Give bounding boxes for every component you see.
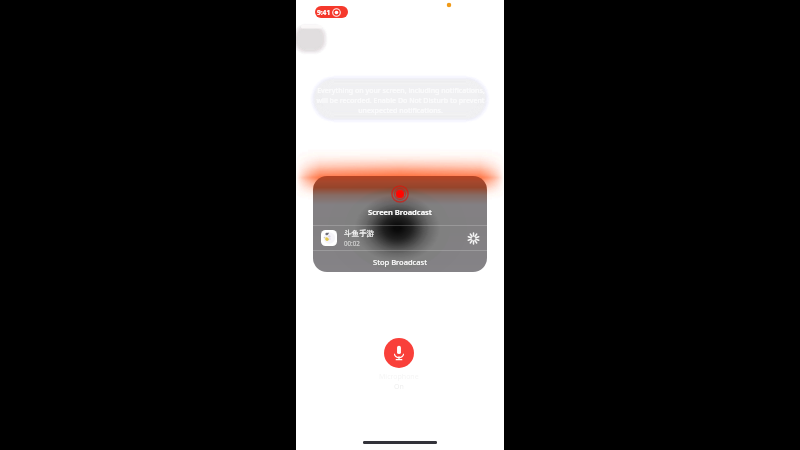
button[interactable]: 斗鱼手游 [313, 226, 487, 250]
button[interactable]: Microphone On [384, 338, 414, 368]
staticText: Screen Broadcast [368, 207, 432, 217]
button[interactable]: Screen recording in progress [315, 6, 348, 18]
staticText: Everything on your screen, including not… [317, 86, 485, 96]
staticText: 9:41 [317, 8, 331, 17]
button[interactable]: Stop Broadcast [313, 251, 487, 272]
staticText: will be recorded. Enable Do Not Disturb … [316, 96, 485, 106]
staticText: unexpected notifications. [358, 106, 443, 116]
staticText: 斗鱼手游 [344, 229, 375, 239]
staticText: 00:02 [344, 239, 360, 247]
staticText: On [394, 382, 404, 392]
staticText: Stop Broadcast [373, 257, 427, 267]
